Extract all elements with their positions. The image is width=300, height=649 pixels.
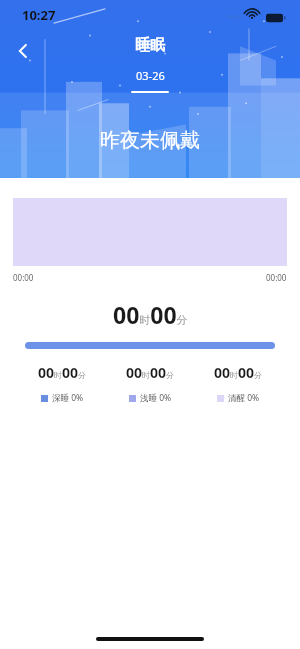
button[interactable]: 清醒 0%	[217, 392, 260, 404]
staticText: 清醒 0%	[228, 392, 260, 404]
button[interactable]: 浅睡 0%	[129, 392, 172, 404]
button[interactable]: 深睡 0%	[41, 392, 84, 404]
staticText: 00时00分	[113, 299, 188, 330]
staticText: 03-26	[136, 68, 165, 83]
staticText: 00时00分	[214, 363, 263, 382]
staticText: 00:00	[266, 272, 287, 283]
staticText: 00时00分	[38, 363, 87, 382]
staticText: 睡眠	[135, 36, 165, 55]
staticText: 浅睡 0%	[140, 392, 172, 404]
staticText: 00时00分	[126, 363, 175, 382]
staticText: 10:27	[22, 6, 56, 24]
button[interactable]: Back	[6, 34, 40, 68]
staticText: 深睡 0%	[52, 392, 84, 404]
staticText: 昨夜未佩戴	[100, 128, 200, 153]
staticText: 00:00	[13, 272, 34, 283]
